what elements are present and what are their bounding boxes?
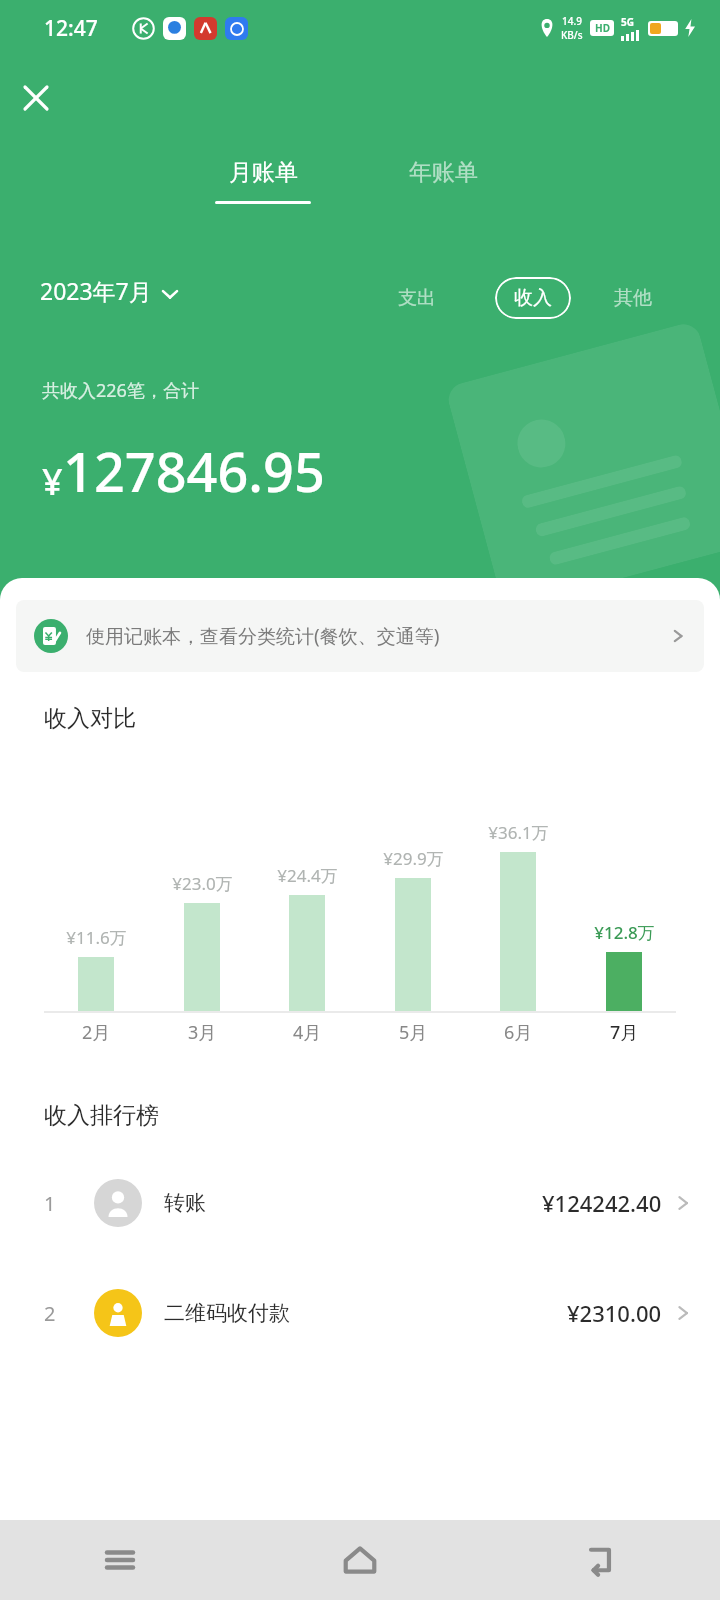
staticText: 5G — [621, 15, 634, 29]
staticText: 转账 — [164, 1190, 542, 1216]
staticText: 3月 — [188, 1020, 217, 1045]
staticText: 共收入226笔，合计 — [42, 378, 199, 403]
staticText: 使用记账本，查看分类统计(餐饮、交通等) — [86, 623, 670, 649]
staticText: 二维码收付款 — [164, 1300, 567, 1326]
staticText: 127846.95 — [63, 434, 325, 508]
staticText: 7月 — [610, 1020, 639, 1045]
staticText: HD — [595, 21, 610, 35]
staticText: 2月 — [82, 1020, 111, 1045]
staticText: ¥23.0万 — [172, 872, 233, 895]
button[interactable]: 年账单 — [383, 158, 503, 187]
button[interactable]: 月账单 — [203, 158, 323, 204]
button[interactable]: 其他 — [614, 278, 652, 318]
staticText: 收入 — [514, 286, 552, 310]
button[interactable]: Home — [240, 1520, 480, 1600]
staticText: ¥12.8万 — [594, 921, 655, 944]
staticText: ¥ — [42, 457, 63, 506]
button[interactable]: 1 — [0, 1168, 720, 1238]
staticText: 2023年7月 — [40, 275, 152, 306]
staticText: ¥11.6万 — [66, 926, 127, 949]
staticText: ¥2310.00 — [567, 1298, 662, 1328]
staticText: 月账单 — [229, 158, 298, 187]
button[interactable]: Close — [10, 72, 62, 124]
staticText: 5月 — [399, 1020, 428, 1045]
staticText: 14.9 — [562, 14, 582, 28]
staticText: KB/s — [561, 28, 583, 42]
staticText: 12:47 — [44, 14, 98, 43]
staticText: 2 — [44, 1300, 56, 1327]
staticText: 年账单 — [409, 158, 478, 187]
staticText: 1 — [44, 1190, 56, 1217]
staticText: 6月 — [504, 1020, 533, 1045]
button[interactable]: Back — [480, 1520, 720, 1600]
staticText: 收入排行榜 — [44, 1101, 159, 1130]
staticText: 收入对比 — [44, 704, 136, 733]
staticText: ¥24.4万 — [277, 864, 338, 887]
staticText: ¥29.9万 — [383, 847, 444, 870]
button[interactable]: 使用记账本，查看分类统计(餐饮、交通等) — [16, 600, 704, 672]
button[interactable]: 2023年7月 — [40, 275, 178, 306]
staticText: ¥36.1万 — [488, 821, 549, 844]
button[interactable]: 支出 — [398, 278, 436, 318]
staticText: 4月 — [293, 1020, 322, 1045]
button[interactable]: 2 — [0, 1278, 720, 1348]
button[interactable]: Recent apps — [0, 1520, 240, 1600]
staticText: 其他 — [614, 286, 652, 310]
button[interactable]: 收入 — [495, 277, 571, 319]
staticText: ¥124242.40 — [542, 1188, 662, 1218]
staticText: 支出 — [398, 286, 436, 310]
